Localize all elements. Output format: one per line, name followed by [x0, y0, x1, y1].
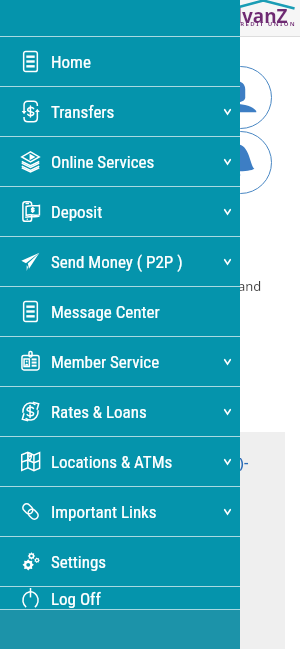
staticText: Settings	[51, 552, 107, 572]
button[interactable]: Home	[0, 37, 240, 86]
staticText: Online Services	[51, 152, 155, 172]
staticText: Important Links	[51, 502, 157, 522]
button[interactable]: Log Off	[0, 587, 240, 610]
staticText: Member Service	[51, 352, 160, 372]
button[interactable]: Online Services	[0, 137, 240, 186]
staticText: Transfers	[51, 102, 115, 122]
staticText: Deposit	[51, 202, 103, 222]
button[interactable]: Rates & Loans	[0, 387, 240, 436]
staticText: )-	[239, 452, 249, 472]
staticText: Home	[51, 52, 91, 72]
button[interactable]: Send Money ( P2P )	[0, 237, 240, 286]
button[interactable]: Settings	[0, 537, 240, 586]
staticText: and	[238, 277, 262, 295]
staticText: Locations & ATMs	[51, 452, 173, 472]
button[interactable]: Transfers	[0, 87, 240, 136]
staticText: dvanZ	[230, 3, 288, 29]
staticText: Send Money ( P2P )	[51, 252, 183, 272]
button[interactable]: Locations & ATMs	[0, 437, 240, 486]
button[interactable]: Important Links	[0, 487, 240, 536]
staticText: Rates & Loans	[51, 402, 147, 422]
staticText: Log Off	[51, 589, 101, 609]
button[interactable]: Member Service	[0, 337, 240, 386]
staticText: CREDIT UNION	[235, 20, 297, 28]
button[interactable]: Message Center	[0, 287, 240, 336]
staticText: Message Center	[51, 302, 160, 322]
button[interactable]: Deposit	[0, 187, 240, 236]
